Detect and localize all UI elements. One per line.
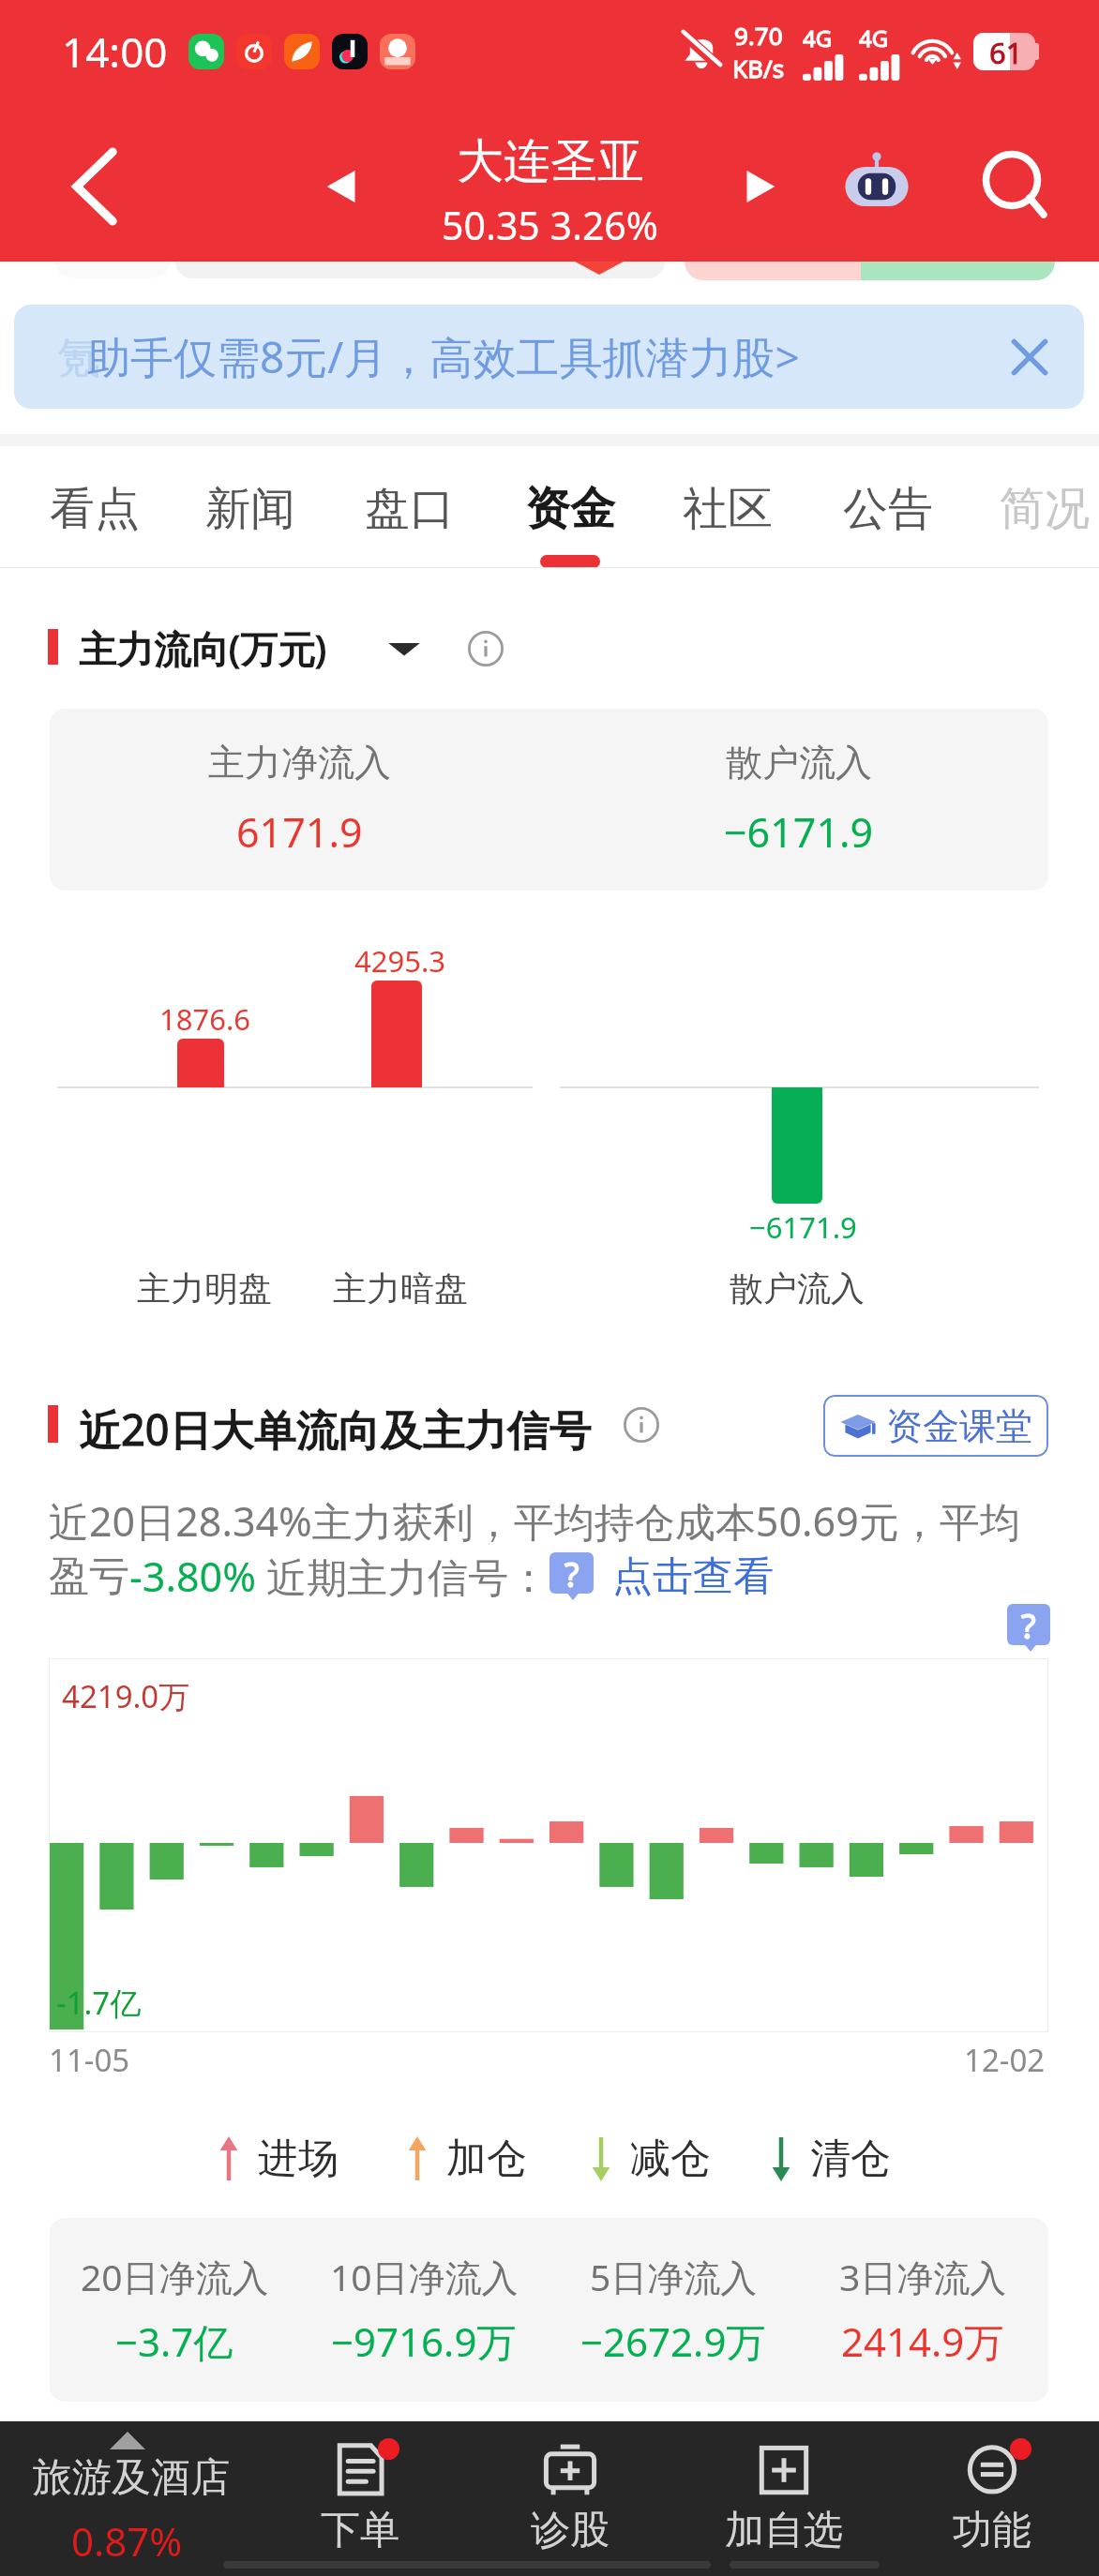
button[interactable]: 清仓 — [769, 2130, 891, 2188]
button[interactable]: 加仓 — [405, 2130, 527, 2188]
staticText: 6171.9 — [236, 804, 363, 860]
button[interactable]: 资金 — [486, 448, 655, 568]
staticText: 11-05 — [49, 2039, 130, 2081]
staticText: 1876.6 — [159, 999, 250, 1039]
staticText: 12-02 — [964, 2039, 1046, 2081]
staticText: 4G — [859, 22, 889, 53]
staticText: 看点 — [50, 481, 140, 537]
button[interactable]: AI assistant — [837, 147, 916, 226]
staticText: 50.35 3.26% — [442, 199, 658, 251]
button[interactable]: 氪 — [14, 305, 1084, 409]
button[interactable]: 社区 — [643, 448, 812, 568]
button[interactable]: 点击查看 — [612, 1551, 774, 1602]
staticText: 20日净流入 — [81, 2252, 269, 2301]
staticText: 2414.9万 — [841, 2314, 1004, 2368]
staticText: 旅游及酒店 — [33, 2453, 230, 2503]
button[interactable]: Help — [1007, 1604, 1050, 1652]
staticText: 进场 — [258, 2134, 339, 2184]
staticText: 主力流向(万元) — [79, 622, 326, 674]
staticText: 下单 — [321, 2506, 399, 2555]
staticText: 主力暗盘 — [333, 1267, 468, 1310]
staticText: 氪 — [57, 331, 100, 385]
button[interactable]: Info — [467, 630, 504, 667]
staticText: 9.70 — [734, 19, 783, 52]
staticText: 功能 — [953, 2506, 1031, 2555]
staticText: 清仓 — [810, 2134, 891, 2184]
staticText: 盈亏 — [49, 1551, 129, 1602]
button[interactable]: 下单 — [258, 2421, 462, 2576]
staticText: 社区 — [683, 481, 773, 537]
staticText: 简况 — [1000, 481, 1090, 537]
staticText: 0.87% — [71, 2514, 183, 2568]
button[interactable]: 盘口 — [325, 448, 494, 568]
staticText: ? — [565, 1551, 580, 1597]
button[interactable]: Help — [549, 1552, 594, 1600]
button[interactable]: 新闻 — [166, 448, 335, 568]
staticText: 加自选 — [725, 2506, 843, 2555]
staticText: 4G — [803, 22, 833, 53]
staticText: ? — [1021, 1603, 1036, 1649]
staticText: 4295.3 — [354, 941, 445, 981]
button[interactable]: 功能 — [890, 2421, 1094, 2576]
staticText: −9716.9万 — [331, 2314, 517, 2368]
staticText: 公告 — [843, 481, 933, 537]
staticText: 4219.0万 — [62, 1675, 190, 1717]
staticText: 61 — [989, 33, 1023, 70]
staticText: 大连圣亚 — [457, 132, 644, 191]
staticText: 散户流入 — [726, 740, 872, 786]
button[interactable]: Info — [623, 1406, 660, 1444]
staticText: 加仓 — [446, 2134, 527, 2184]
button[interactable]: 资金课堂 — [823, 1395, 1048, 1457]
staticText: −6171.9 — [724, 804, 874, 860]
staticText: 主力净流入 — [208, 740, 391, 786]
staticText: -1.7亿 — [56, 1982, 142, 2024]
staticText: 14:00 — [62, 23, 168, 80]
staticText: 3日净流入 — [839, 2252, 1007, 2301]
staticText: 新闻 — [205, 481, 295, 537]
staticText: −2672.9万 — [580, 2314, 766, 2368]
staticText: KB/s — [732, 52, 785, 84]
button[interactable]: 公告 — [804, 448, 972, 568]
button[interactable]: Close banner — [1005, 333, 1054, 382]
button[interactable]: 诊股 — [468, 2421, 672, 2576]
button[interactable]: 减仓 — [589, 2130, 711, 2188]
staticText: 资金 — [525, 481, 615, 537]
button[interactable]: Previous stock — [310, 164, 355, 209]
staticText: 减仓 — [630, 2134, 711, 2184]
button[interactable]: Back — [56, 146, 137, 227]
button[interactable]: 加自选 — [682, 2421, 886, 2576]
staticText: 近期主力信号： — [256, 1549, 549, 1604]
staticText: -3.80% — [129, 1549, 256, 1604]
staticText: 助手仅需8元/月，高效工具抓潜力股> — [87, 327, 800, 386]
staticText: 5日净流入 — [590, 2252, 758, 2301]
staticText: 诊股 — [531, 2506, 610, 2555]
button[interactable]: Next stock — [746, 164, 791, 209]
staticText: 近20日大单流向及主力信号 — [79, 1400, 592, 1458]
staticText: 资金课堂 — [886, 1403, 1032, 1449]
staticText: 10日净流入 — [330, 2252, 519, 2301]
staticText: 盘口 — [365, 481, 455, 537]
button[interactable]: Search — [975, 147, 1054, 226]
staticText: 近20日28.34%主力获利，平均持仓成本50.69元，平均 — [49, 1493, 1020, 1549]
button[interactable]: Choose range — [384, 628, 424, 667]
button[interactable]: 旅游及酒店 — [0, 2421, 255, 2576]
staticText: 主力明盘 — [137, 1267, 272, 1310]
button[interactable]: 进场 — [217, 2130, 339, 2188]
staticText: −6171.9 — [749, 1207, 857, 1247]
button[interactable]: 看点 — [10, 448, 179, 568]
staticText: −3.7亿 — [115, 2314, 233, 2368]
button[interactable]: 简况 — [960, 448, 1099, 568]
staticText: 散户流入 — [730, 1267, 865, 1310]
